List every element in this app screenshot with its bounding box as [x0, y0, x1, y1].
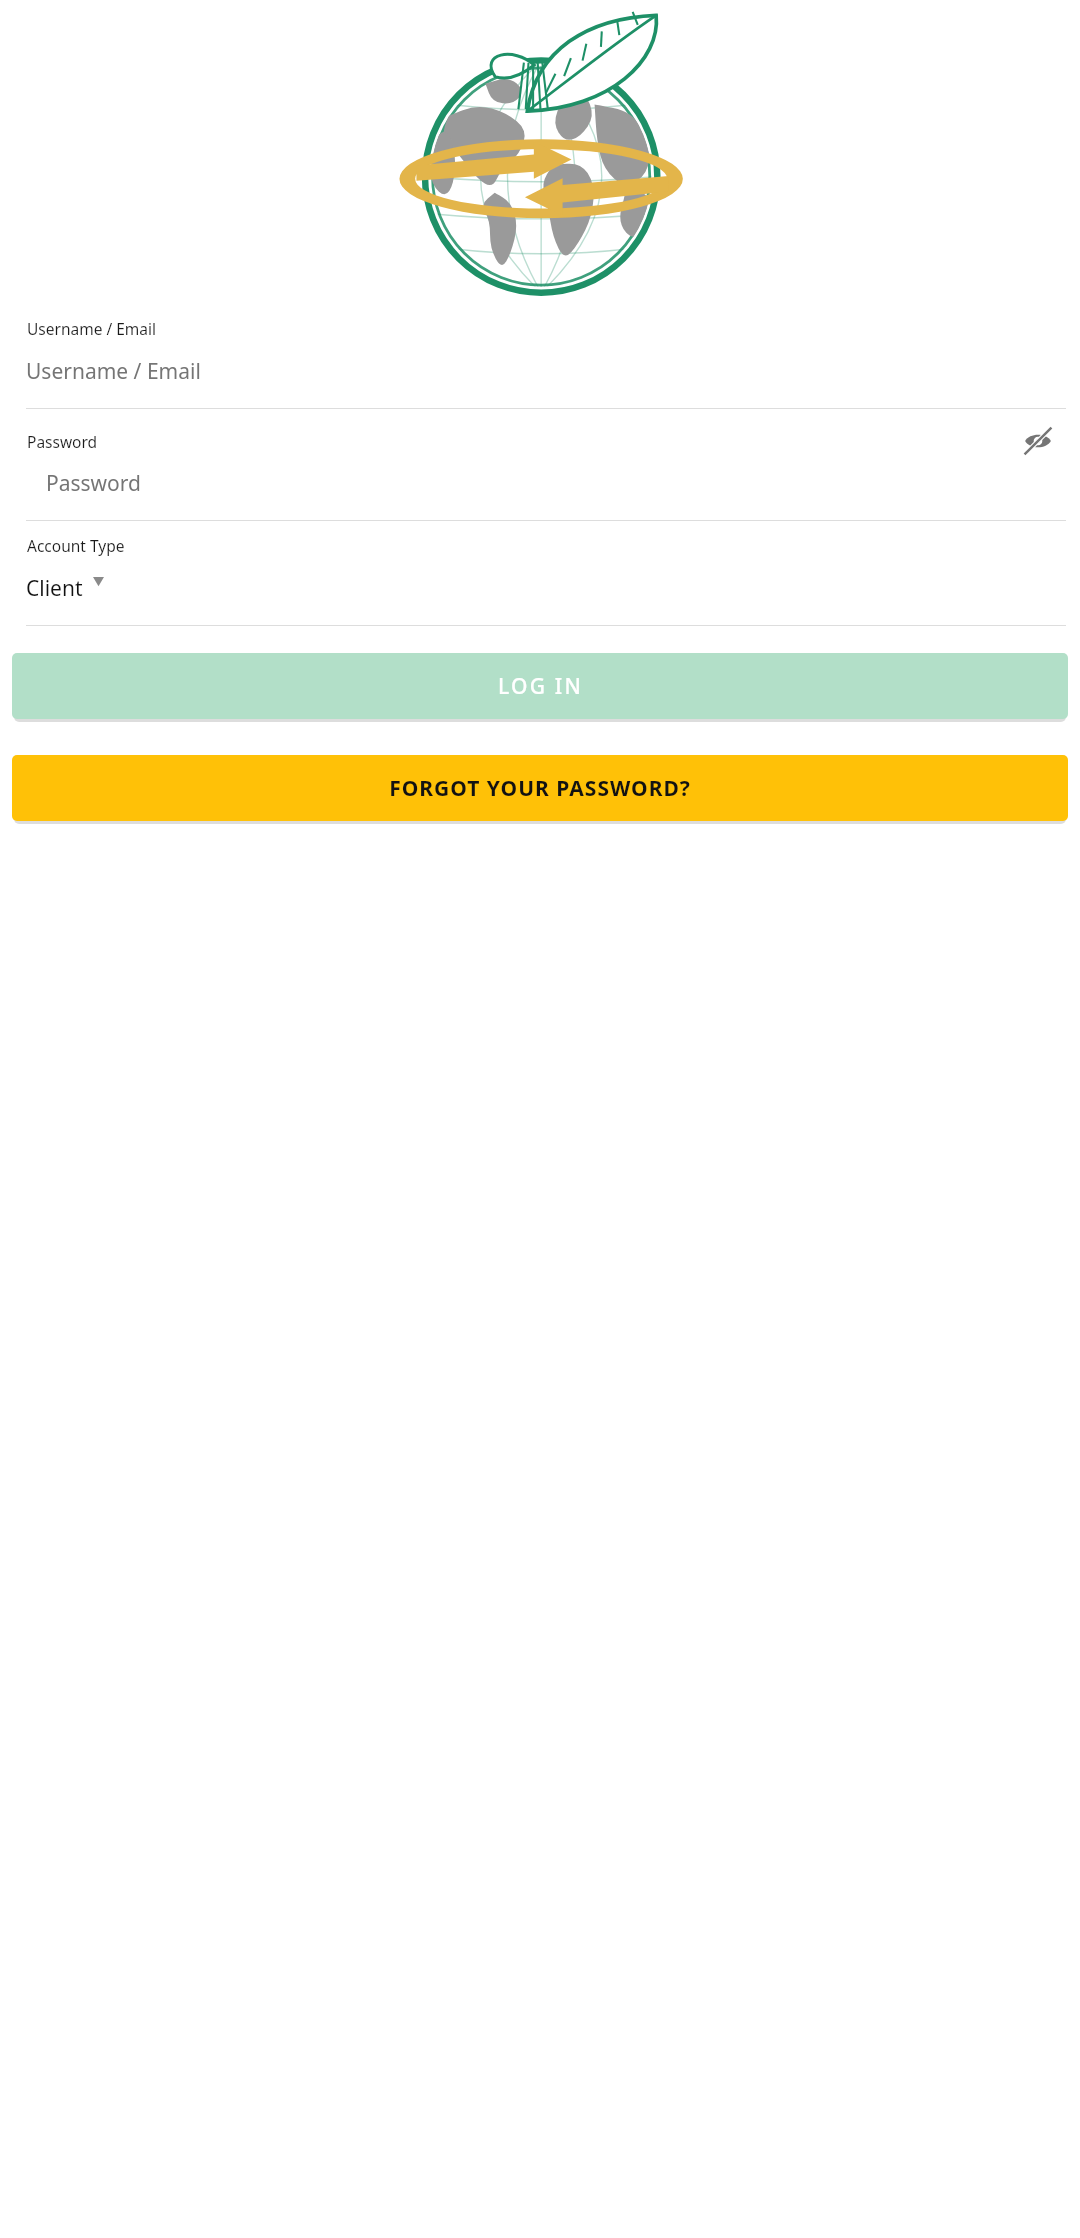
staticText: LOG IN: [498, 672, 583, 701]
button[interactable]: FORGOT YOUR PASSWORD?: [12, 755, 1068, 821]
staticText: FORGOT YOUR PASSWORD?: [389, 774, 691, 803]
button[interactable]: Account Type: [0, 521, 1080, 626]
staticText: Username / Email: [27, 318, 157, 339]
staticText: Account Type: [27, 535, 125, 556]
button[interactable]: Toggle password visibility: [1020, 423, 1056, 459]
staticText: Password: [46, 469, 141, 498]
staticText: Password: [27, 431, 98, 452]
staticText: Client: [26, 574, 83, 603]
staticText: Username / Email: [26, 357, 201, 386]
button[interactable]: LOG IN: [12, 653, 1068, 719]
button[interactable]: Password: [0, 409, 1080, 521]
button[interactable]: Username / Email: [0, 304, 1080, 409]
